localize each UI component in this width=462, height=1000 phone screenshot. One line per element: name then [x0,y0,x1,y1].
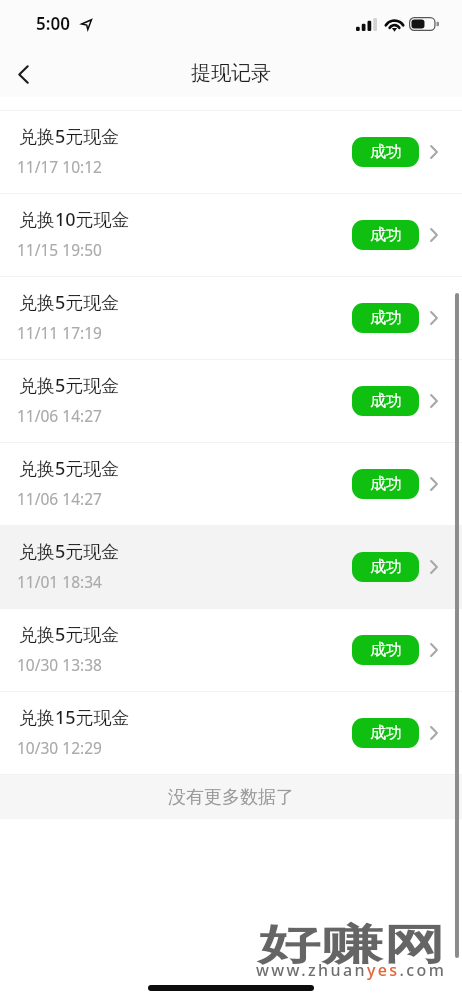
button[interactable]: Back [0,51,46,97]
button[interactable]: 兑换5元现金 [0,111,462,193]
button[interactable]: 兑换5元现金 [0,526,462,608]
staticText: www.zhuanyes.com [256,959,447,981]
staticText: 没有更多数据了 [168,786,294,809]
button[interactable]: 兑换5元现金 [0,277,462,359]
button[interactable]: 兑换5元现金 [0,609,462,691]
staticText: 11/01 18:34 [17,571,102,592]
staticText: 成功 [370,391,402,411]
staticText: 兑换10元现金 [19,207,130,232]
staticText: 兑换5元现金 [19,622,120,647]
staticText: 10/30 12:29 [17,737,102,758]
staticText: 兑换5元现金 [19,124,120,149]
button[interactable]: 兑换5元现金 [0,443,462,525]
staticText: 11/17 10:12 [17,156,102,177]
staticText: 好赚网 [258,919,446,972]
staticText: 兑换5元现金 [19,373,120,398]
staticText: 成功 [370,640,402,660]
staticText: 成功 [370,225,402,245]
staticText: 11/06 14:27 [17,405,102,426]
staticText: 11/15 19:50 [17,239,102,260]
staticText: 成功 [370,557,402,577]
button[interactable]: 兑换10元现金 [0,194,462,276]
staticText: 成功 [370,308,402,328]
staticText: 成功 [370,142,402,162]
staticText: 成功 [370,723,402,743]
staticText: 11/06 14:27 [17,488,102,509]
staticText: 5:00 [36,12,70,35]
staticText: 兑换5元现金 [19,456,120,481]
staticText: 10/30 13:38 [17,654,102,675]
staticText: 提现记录 [191,61,271,86]
staticText: 兑换5元现金 [19,290,120,315]
button[interactable]: 兑换5元现金 [0,360,462,442]
staticText: 兑换15元现金 [19,705,130,730]
staticText: 兑换5元现金 [19,539,120,564]
staticText: 11/11 17:19 [17,322,102,343]
staticText: 成功 [370,474,402,494]
button[interactable]: 兑换15元现金 [0,692,462,774]
